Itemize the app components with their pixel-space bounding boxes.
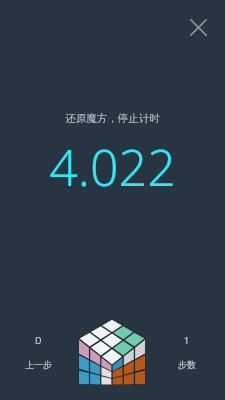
staticText: 上一步: [25, 359, 52, 370]
button[interactable]: Close: [183, 12, 213, 42]
staticText: D: [35, 334, 42, 346]
button[interactable]: 1: [148, 304, 225, 400]
staticText: 4.022: [49, 133, 176, 201]
staticText: 步数: [178, 359, 196, 370]
staticText: 1: [184, 334, 190, 346]
button[interactable]: D: [0, 304, 76, 400]
staticText: 还原魔方，停止计时: [65, 112, 160, 125]
